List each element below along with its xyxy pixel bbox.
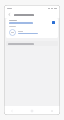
button[interactable]: Back <box>7 12 12 17</box>
button[interactable]: Select <box>6 18 58 38</box>
button[interactable]: Select <box>51 20 55 24</box>
button[interactable] <box>6 41 58 46</box>
button[interactable]: Home <box>28 107 36 115</box>
button[interactable]: Back <box>8 107 16 115</box>
button[interactable]: Recents <box>48 107 56 115</box>
button[interactable]: Avatar <box>9 29 16 36</box>
